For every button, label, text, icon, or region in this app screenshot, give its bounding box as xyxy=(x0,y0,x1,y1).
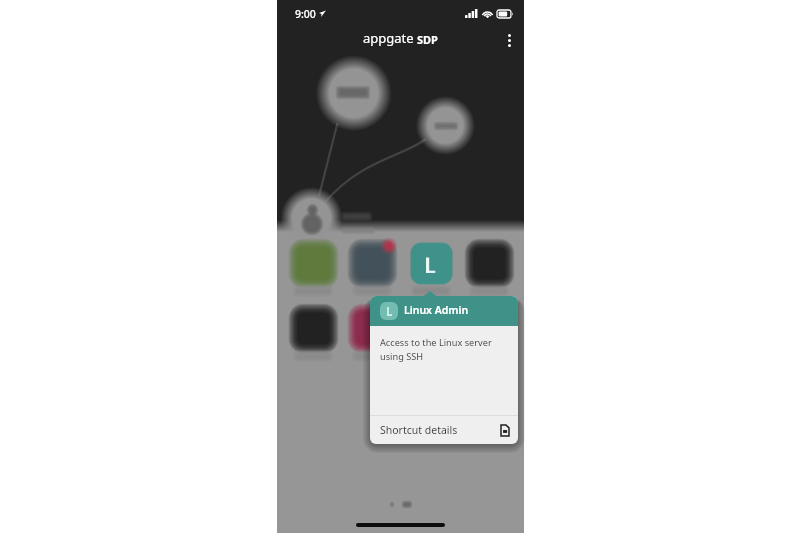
staticText: Shortcut details xyxy=(380,423,458,437)
staticText: SDP xyxy=(417,32,438,47)
staticText: Linux Admin xyxy=(404,303,469,317)
staticText: Access to the Linux server using SSH xyxy=(380,336,492,362)
staticText: appgate xyxy=(363,29,414,47)
staticText: 9:00 xyxy=(295,7,316,21)
button[interactable]: More options xyxy=(497,28,521,52)
button[interactable]: Shortcut details xyxy=(370,416,518,444)
